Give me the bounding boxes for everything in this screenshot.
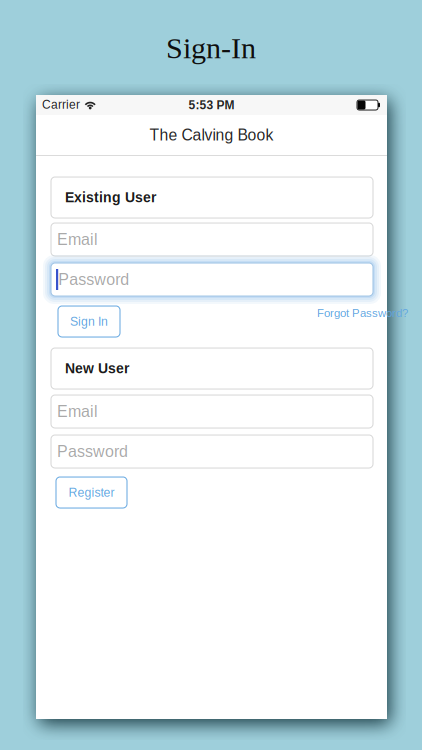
button[interactable]: Email [51, 395, 373, 428]
button[interactable]: New User [51, 348, 373, 389]
staticText: Password [58, 271, 129, 288]
staticText: Forgot Password? [317, 307, 408, 319]
button[interactable]: Password [51, 435, 373, 468]
staticText: Carrier [42, 98, 80, 111]
button[interactable]: Register [56, 477, 127, 508]
staticText: New User [65, 361, 129, 376]
button[interactable]: Forgot Password? [312, 305, 408, 321]
staticText: Sign-In [166, 31, 256, 65]
button[interactable]: Password [43, 255, 381, 304]
staticText: Existing User [65, 190, 156, 205]
staticText: 5:53 PM [188, 98, 234, 112]
button[interactable]: Sign In [58, 306, 120, 337]
staticText: Register [68, 486, 114, 499]
staticText: Sign In [70, 315, 108, 328]
staticText: The Calving Book [149, 126, 273, 144]
staticText: Password [57, 443, 128, 460]
staticText: Email [57, 403, 98, 420]
button[interactable]: Existing User [51, 177, 373, 218]
staticText: Email [57, 231, 98, 248]
button[interactable]: Email [51, 223, 373, 256]
